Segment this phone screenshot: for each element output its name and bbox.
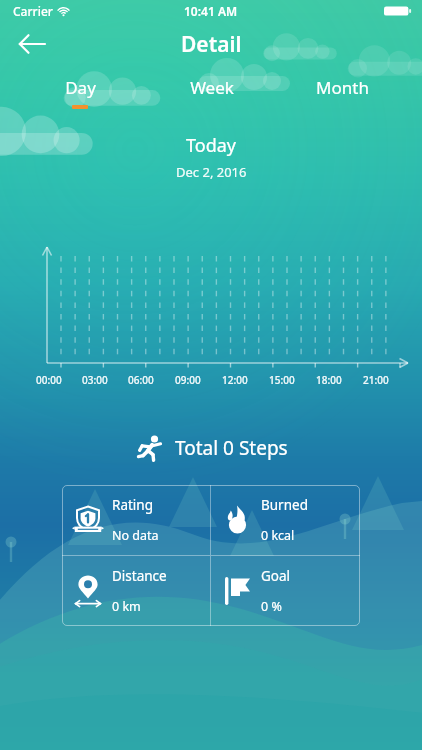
staticText: Distance	[112, 567, 167, 585]
staticText: 0 km	[112, 598, 141, 615]
staticText: Week	[190, 76, 234, 99]
staticText: 0 kcal	[261, 527, 295, 544]
staticText: 03:00	[82, 373, 108, 387]
staticText: 12:00	[222, 373, 248, 387]
button[interactable]: Month	[277, 72, 408, 113]
staticText: 10:41 AM	[184, 3, 238, 19]
staticText: Detail	[181, 30, 242, 59]
button[interactable]: Goal	[211, 556, 360, 626]
staticText: 15:00	[269, 373, 295, 387]
staticText: 18:00	[316, 373, 342, 387]
staticText: Today	[186, 133, 236, 158]
staticText: Total 0 Steps	[175, 435, 288, 461]
button[interactable]: Back	[8, 22, 54, 66]
button[interactable]: Rating	[62, 485, 210, 555]
staticText: 21:00	[363, 373, 389, 387]
staticText: No data	[112, 527, 159, 544]
staticText: Goal	[261, 567, 291, 585]
button[interactable]: Distance	[62, 556, 210, 626]
button[interactable]: Week	[146, 72, 277, 113]
staticText: Rating	[112, 496, 153, 514]
staticText: Carrier	[13, 3, 53, 19]
staticText: 0 %	[261, 598, 282, 615]
staticText: Day	[65, 76, 96, 99]
staticText: Month	[316, 76, 369, 99]
button[interactable]: Burned	[211, 485, 360, 555]
staticText: 06:00	[128, 373, 154, 387]
staticText: 00:00	[36, 373, 62, 387]
button[interactable]: Day	[14, 72, 146, 113]
staticText: 09:00	[175, 373, 201, 387]
staticText: Dec 2, 2016	[176, 163, 247, 181]
staticText: Burned	[261, 496, 308, 514]
